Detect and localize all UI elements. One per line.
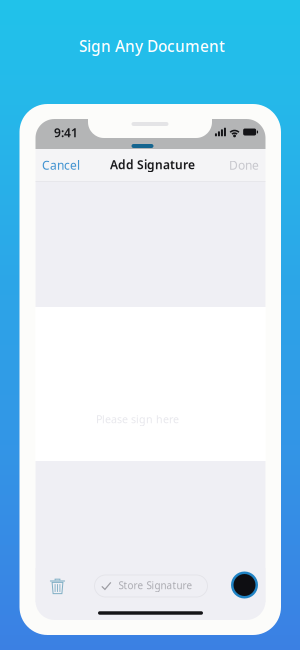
button[interactable]: Done xyxy=(225,150,263,180)
staticText: Add Signature xyxy=(110,156,195,172)
staticText: Sign Any Document xyxy=(79,36,225,56)
button[interactable]: Delete signature xyxy=(45,575,69,599)
staticText: Store Signature xyxy=(118,579,192,592)
staticText: Done xyxy=(229,157,259,173)
button[interactable]: Cancel xyxy=(37,150,85,180)
staticText: 9:41 xyxy=(54,124,78,140)
staticText: Please sign here xyxy=(96,412,179,426)
button[interactable]: Ink colour xyxy=(230,571,258,599)
button[interactable]: Store Signature xyxy=(94,575,207,597)
staticText: Cancel xyxy=(42,157,80,173)
